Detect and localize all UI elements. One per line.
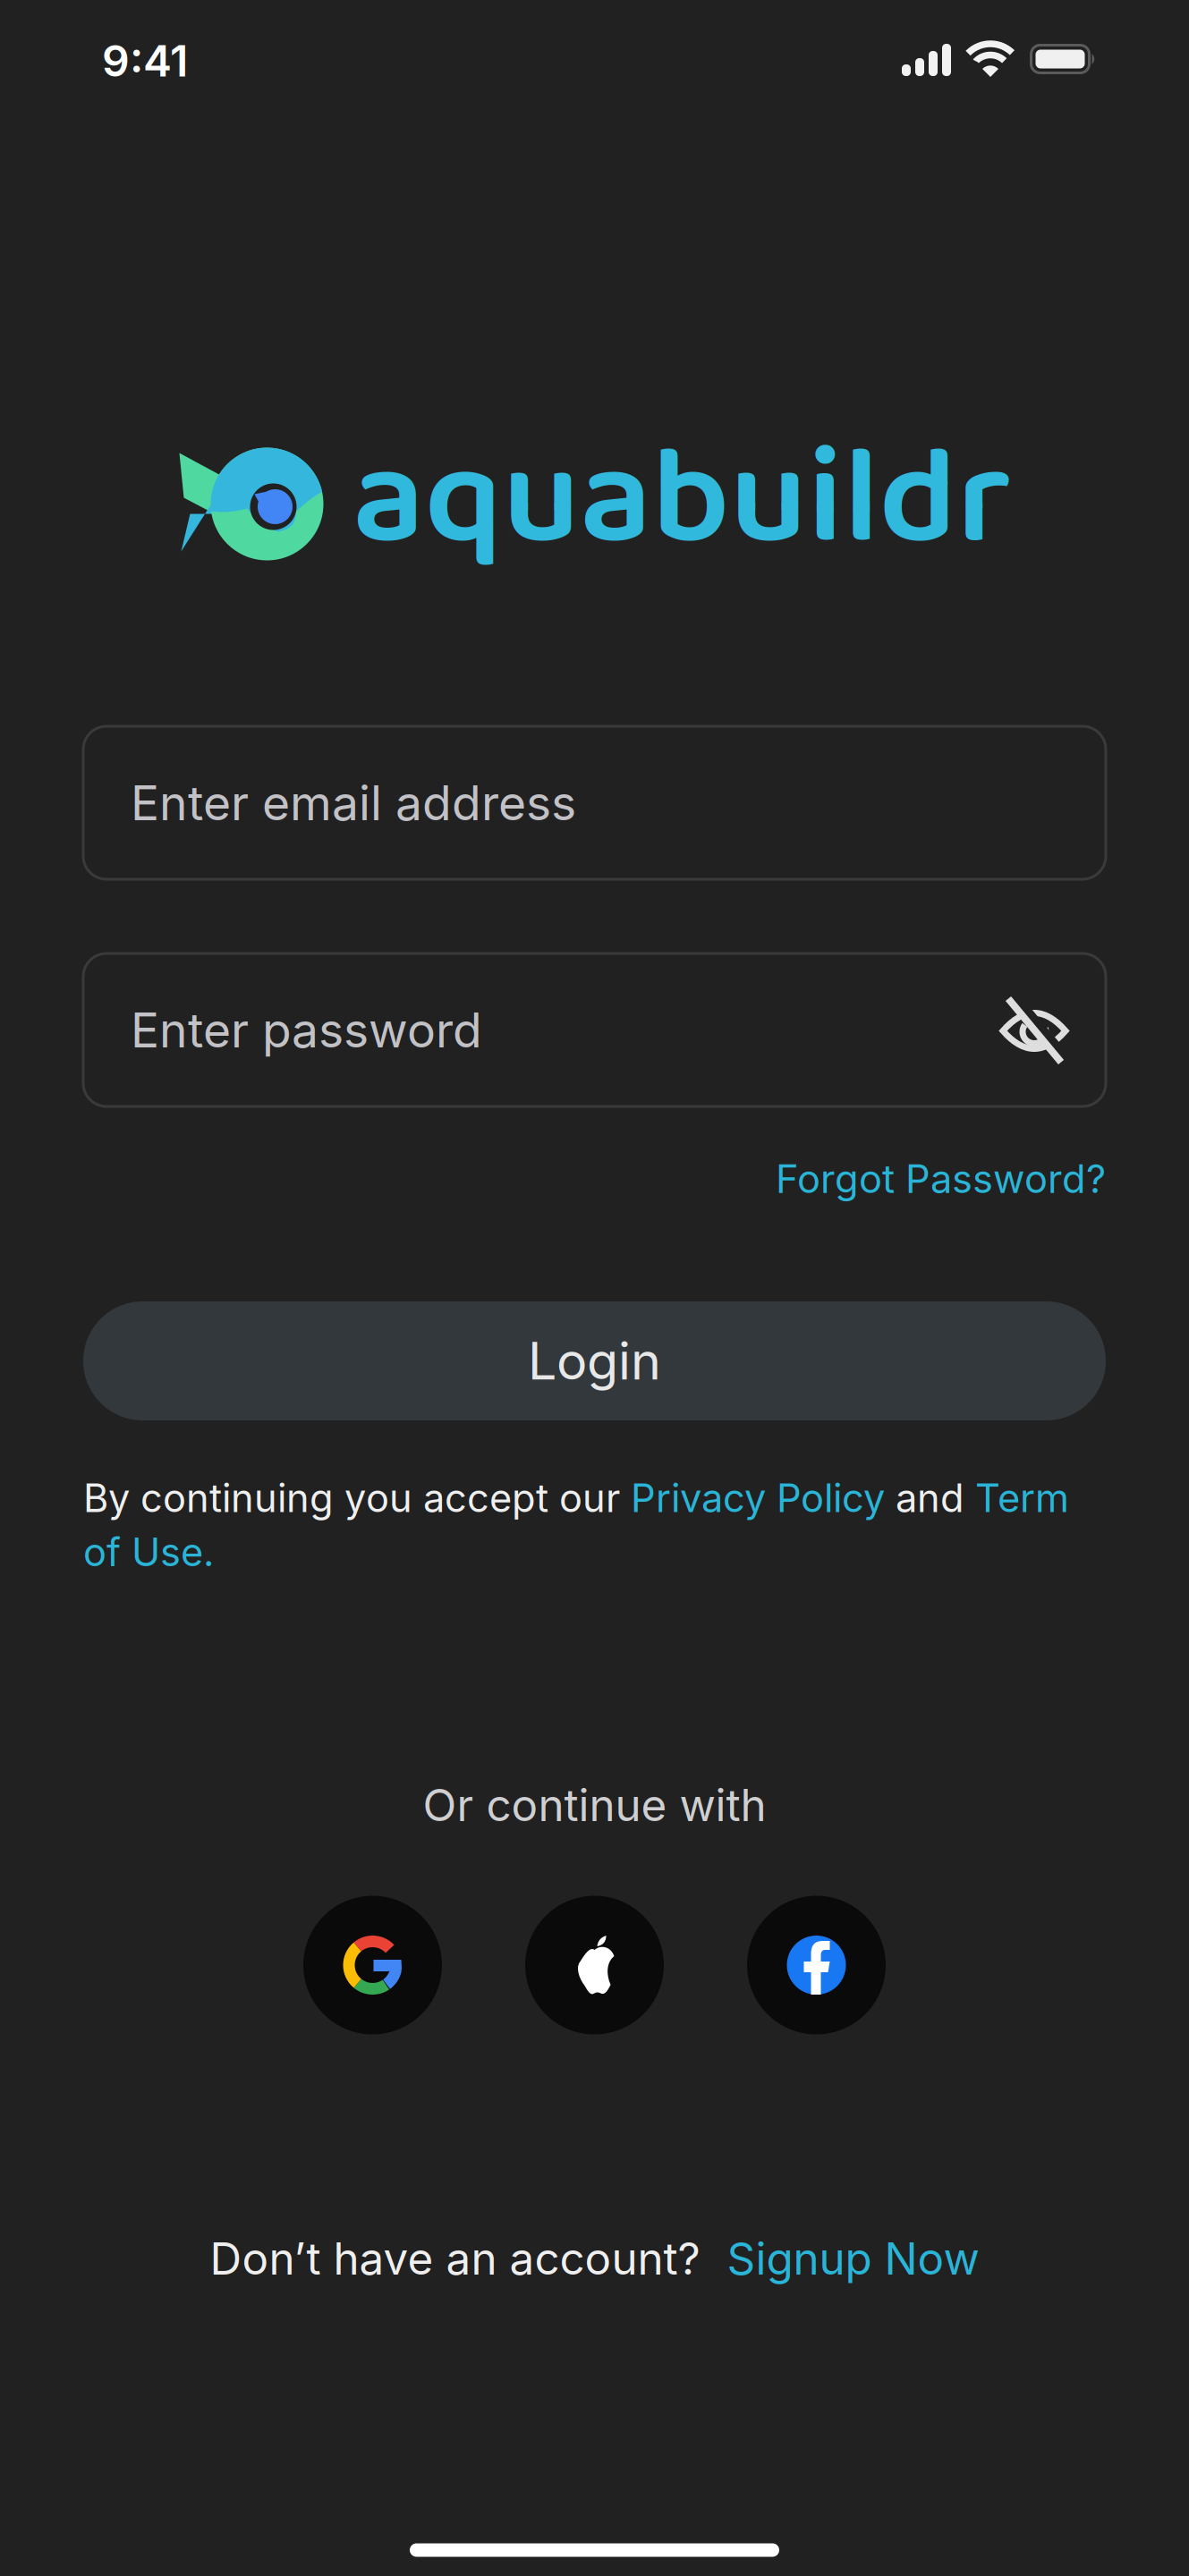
staticText: aquabuildr	[353, 391, 1011, 611]
button[interactable]: Forgot Password?	[776, 1155, 1106, 1202]
staticText: and	[885, 1475, 975, 1521]
button[interactable]: Enter email address	[83, 726, 1106, 879]
button[interactable]: Privacy Policy	[631, 1475, 885, 1521]
staticText: of Use.	[83, 1529, 214, 1575]
staticText: Don’t have an account?	[210, 2232, 700, 2285]
staticText: Enter email address	[131, 774, 576, 832]
staticText: By continuing you accept our	[83, 1475, 631, 1521]
staticText: Term	[975, 1475, 1069, 1521]
button[interactable]: Signup Now	[727, 2232, 979, 2285]
staticText: Signup Now	[727, 2232, 979, 2285]
staticText: Privacy Policy	[631, 1475, 885, 1521]
button[interactable]	[525, 1896, 664, 2034]
staticText: Forgot Password?	[776, 1155, 1106, 1202]
button[interactable]	[303, 1896, 442, 2034]
staticText: 9:41	[102, 35, 188, 87]
button[interactable]	[747, 1896, 886, 2034]
button[interactable]: Enter password	[83, 953, 1106, 1106]
button[interactable]: of Use.	[83, 1529, 214, 1575]
button[interactable]: Login	[83, 1301, 1106, 1420]
staticText: Enter password	[131, 1001, 482, 1059]
button[interactable]: Term	[975, 1475, 1069, 1521]
staticText: Or continue with	[423, 1778, 766, 1832]
staticText: Login	[528, 1330, 661, 1392]
